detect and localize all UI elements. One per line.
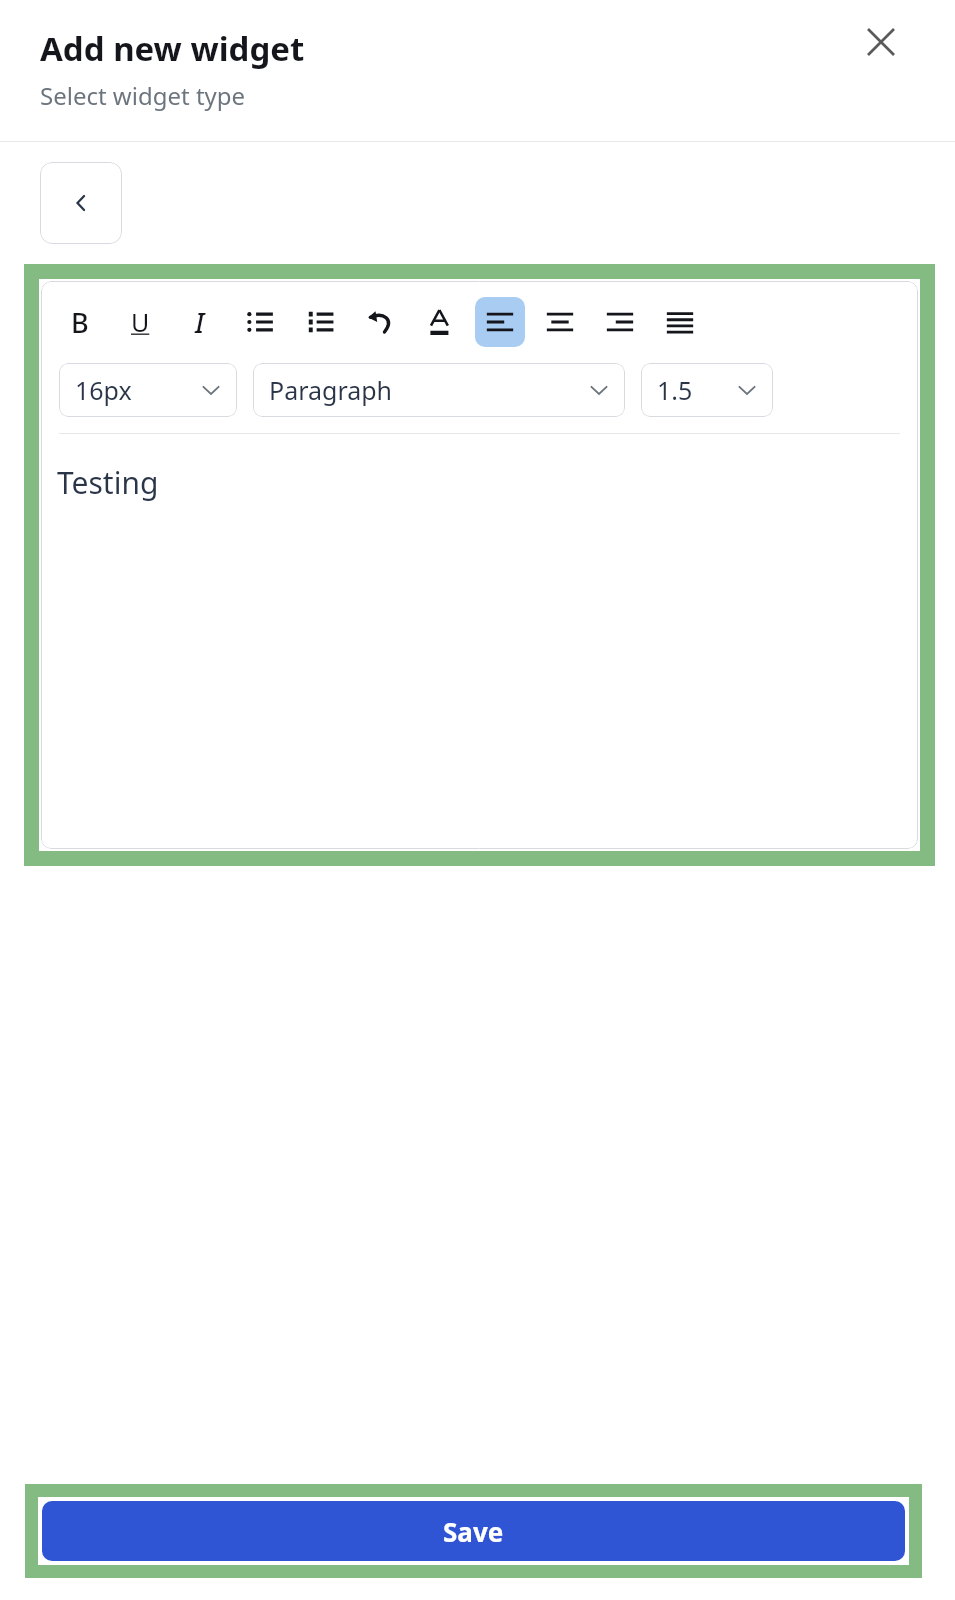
staticText: Add new widget bbox=[40, 26, 305, 71]
button[interactable]: Paragraph bbox=[253, 363, 625, 417]
button[interactable]: 1.5 bbox=[641, 363, 773, 417]
staticText: Paragraph bbox=[269, 373, 393, 407]
button[interactable]: Underline bbox=[115, 297, 165, 347]
button[interactable]: Italic bbox=[175, 297, 225, 347]
staticText: I bbox=[195, 304, 205, 341]
button[interactable]: Align center bbox=[535, 297, 585, 347]
button[interactable]: Align left bbox=[475, 297, 525, 347]
staticText: 16px bbox=[75, 373, 132, 407]
button[interactable]: Numbered list bbox=[295, 297, 345, 347]
button[interactable]: Bold bbox=[55, 297, 105, 347]
button[interactable]: Back bbox=[40, 162, 122, 244]
button[interactable]: Bulleted list bbox=[235, 297, 285, 347]
staticText: U bbox=[131, 305, 150, 339]
staticText: Testing bbox=[57, 462, 159, 503]
staticText: 1.5 bbox=[657, 373, 693, 407]
button[interactable]: Text color bbox=[415, 297, 465, 347]
staticText: B bbox=[71, 304, 89, 341]
staticText: Save bbox=[443, 1514, 504, 1549]
button[interactable]: 16px bbox=[59, 363, 237, 417]
staticText: Select widget type bbox=[40, 79, 246, 112]
button[interactable]: Justify bbox=[655, 297, 705, 347]
button[interactable]: Close bbox=[859, 20, 903, 64]
button[interactable]: Align right bbox=[595, 297, 645, 347]
button[interactable]: Save bbox=[42, 1501, 905, 1561]
button[interactable]: Undo bbox=[355, 297, 405, 347]
